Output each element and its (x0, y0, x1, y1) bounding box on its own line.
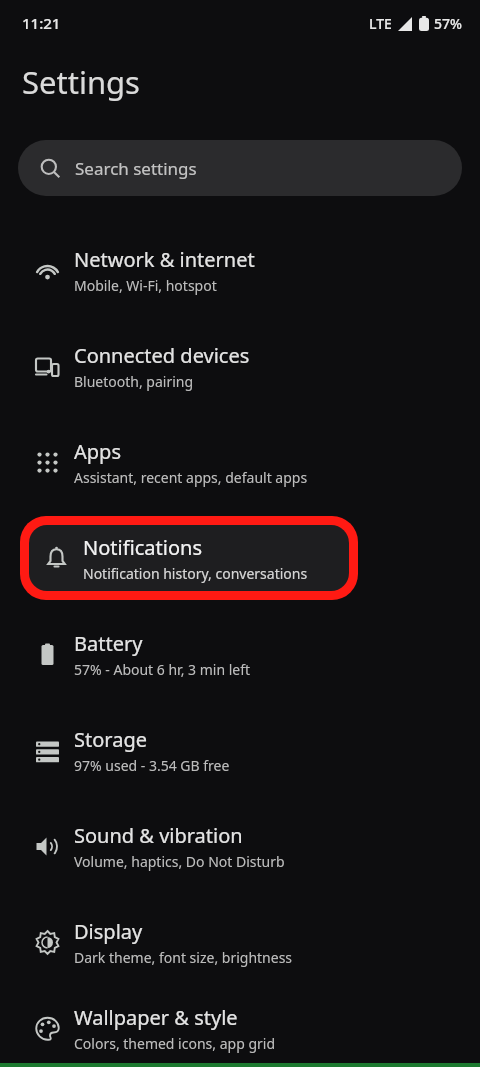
staticText: Storage (74, 726, 147, 753)
staticText: 97% used - 3.54 GB free (74, 756, 230, 775)
staticText: Apps (74, 438, 121, 465)
staticText: Battery (74, 630, 143, 657)
button[interactable]: Apps (0, 414, 480, 510)
staticText: Notification history, conversations (83, 564, 308, 583)
staticText: Settings (22, 61, 140, 103)
button[interactable]: Battery (0, 606, 480, 702)
button[interactable]: Network & internet (0, 222, 480, 318)
button[interactable]: Display (0, 894, 480, 990)
button[interactable]: Sound & vibration (0, 798, 480, 894)
staticText: Network & internet (74, 246, 255, 273)
staticText: Display (74, 918, 143, 945)
staticText: Dark theme, font size, brightness (74, 948, 293, 967)
staticText: 57% - About 6 hr, 3 min left (74, 660, 251, 679)
staticText: 57% (434, 14, 462, 33)
staticText: Assistant, recent apps, default apps (74, 468, 308, 487)
staticText: Bluetooth, pairing (74, 372, 194, 391)
staticText: Mobile, Wi-Fi, hotspot (74, 276, 217, 295)
staticText: Sound & vibration (74, 822, 243, 849)
staticText: Connected devices (74, 342, 250, 369)
button[interactable]: Wallpaper & style (0, 990, 480, 1067)
staticText: LTE (369, 14, 392, 33)
button[interactable]: Notifications (20, 516, 358, 600)
staticText: Colors, themed icons, app grid (74, 1034, 275, 1053)
staticText: Search settings (75, 157, 197, 180)
button[interactable]: Search settings (18, 140, 462, 196)
button[interactable]: Storage (0, 702, 480, 798)
staticText: Notifications (83, 534, 202, 561)
staticText: Wallpaper & style (74, 1004, 238, 1031)
staticText: 11:21 (22, 13, 61, 33)
staticText: Volume, haptics, Do Not Disturb (74, 852, 285, 871)
button[interactable]: Connected devices (0, 318, 480, 414)
